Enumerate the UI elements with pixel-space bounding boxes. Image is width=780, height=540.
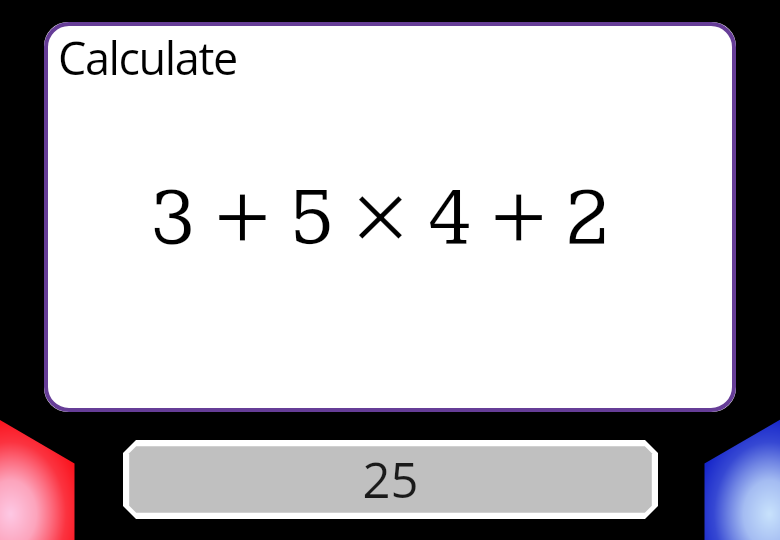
staticText: Calculate xyxy=(58,27,237,88)
staticText: 25 xyxy=(362,446,419,513)
button[interactable]: 25 xyxy=(123,440,658,519)
button[interactable]: Previous xyxy=(0,421,75,540)
button[interactable]: Next xyxy=(705,421,780,540)
staticText: 3 + 5 × 4 + 2 xyxy=(150,169,611,268)
button[interactable]: Calculate xyxy=(44,22,736,412)
